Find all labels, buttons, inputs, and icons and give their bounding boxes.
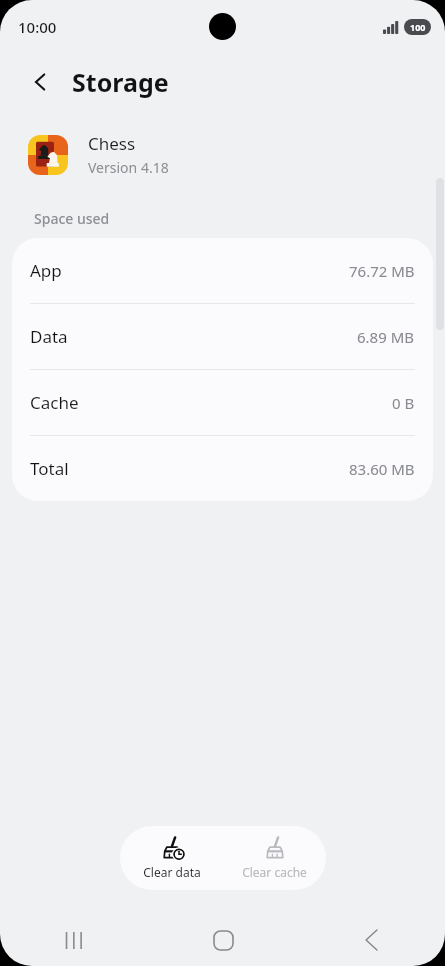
button[interactable]: Back	[22, 63, 60, 101]
staticText: Clear cache	[242, 864, 307, 880]
staticText: 76.72 MB	[349, 261, 415, 281]
button[interactable]: Recents	[0, 914, 149, 966]
button[interactable]: Clear data	[120, 826, 223, 890]
staticText: 10:00	[18, 17, 57, 37]
button[interactable]: Cache	[12, 370, 433, 436]
staticText: 100	[410, 21, 426, 33]
staticText: 0 B	[392, 393, 415, 413]
button[interactable]: App	[12, 238, 433, 304]
button[interactable]: Clear cache	[223, 826, 326, 890]
staticText: Cache	[30, 391, 79, 414]
staticText: 6.89 MB	[357, 327, 415, 347]
staticText: Storage	[72, 65, 169, 99]
staticText: Clear data	[143, 864, 201, 880]
button[interactable]: Back	[297, 914, 445, 966]
staticText: 83.60 MB	[349, 459, 415, 479]
button[interactable]: Home	[149, 914, 297, 966]
staticText: App	[30, 259, 62, 282]
staticText: Version 4.18	[88, 158, 169, 177]
staticText: Chess	[88, 132, 136, 155]
button[interactable]: Total	[12, 436, 433, 501]
staticText: Data	[30, 325, 68, 348]
button[interactable]: Data	[12, 304, 433, 370]
staticText: Total	[30, 457, 69, 480]
staticText: Space used	[34, 209, 110, 228]
